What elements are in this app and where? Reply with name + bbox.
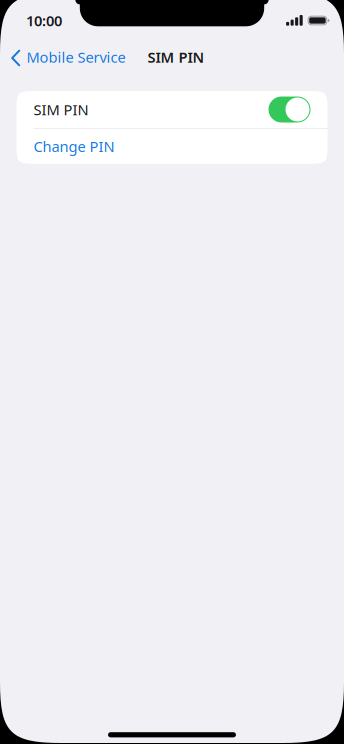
staticText: SIM PIN — [33, 100, 88, 119]
staticText: Change PIN — [33, 137, 114, 156]
button[interactable]: Mobile Service — [0, 42, 135, 72]
button[interactable]: SIM PIN — [16, 91, 327, 128]
staticText: SIM PIN — [147, 47, 204, 67]
button[interactable]: Change PIN — [16, 129, 327, 164]
staticText: 10:00 — [26, 11, 62, 30]
staticText: Mobile Service — [26, 47, 125, 67]
